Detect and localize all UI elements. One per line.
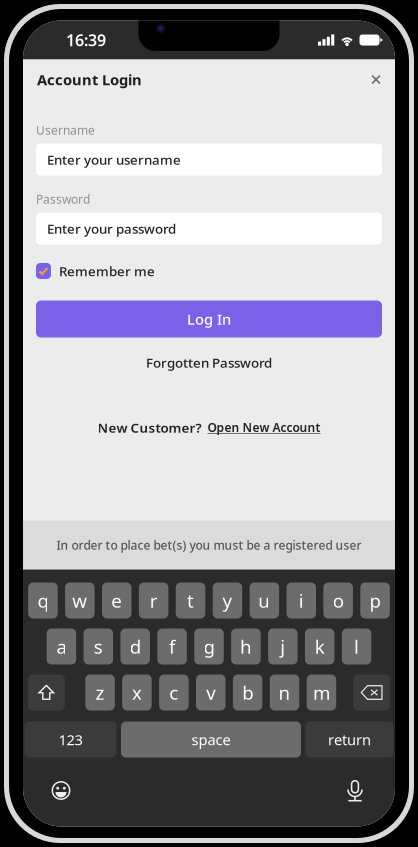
staticText: y (222, 588, 232, 613)
button[interactable]: p (360, 582, 390, 618)
staticText: 123 (58, 730, 82, 749)
staticText: z (96, 680, 105, 705)
staticText: Enter your password (47, 220, 176, 237)
button[interactable]: e (102, 582, 131, 618)
button[interactable]: j (268, 628, 298, 664)
staticText: c (169, 680, 178, 705)
button[interactable]: Log In (36, 300, 382, 337)
staticText: d (130, 634, 141, 659)
staticText: g (203, 634, 214, 659)
button[interactable]: n (270, 674, 299, 710)
button[interactable]: w (65, 582, 95, 618)
staticText: space (191, 730, 230, 749)
button[interactable]: Enter your password (36, 212, 382, 244)
button[interactable]: x (122, 674, 152, 710)
button[interactable]: a (47, 628, 76, 664)
staticText: v (206, 680, 215, 705)
staticText: 16:39 (66, 29, 106, 51)
staticText: Open New Account (207, 419, 320, 435)
button[interactable]: i (286, 582, 316, 618)
staticText: w (72, 588, 87, 613)
staticText: Account Login (37, 70, 142, 89)
button[interactable]: z (85, 674, 115, 710)
button[interactable]: Emoji (45, 775, 77, 805)
button[interactable]: f (157, 628, 187, 664)
staticText: s (94, 634, 103, 659)
staticText: k (315, 634, 325, 659)
button[interactable]: Shift (28, 674, 65, 710)
button[interactable]: b (233, 674, 262, 710)
button[interactable]: space (121, 721, 301, 757)
staticText: t (187, 588, 194, 613)
button[interactable]: h (231, 628, 261, 664)
button[interactable]: Enter your username (36, 143, 382, 175)
staticText: m (313, 680, 330, 705)
button[interactable]: q (28, 582, 58, 618)
staticText: b (242, 680, 253, 705)
button[interactable]: y (213, 582, 242, 618)
button[interactable]: Close (361, 64, 391, 94)
button[interactable]: l (342, 628, 371, 664)
button[interactable]: m (307, 674, 336, 710)
button[interactable]: s (84, 628, 113, 664)
staticText: In order to place bet(s) you must be a r… (56, 537, 361, 553)
button[interactable]: Delete (353, 674, 390, 710)
button[interactable]: r (139, 582, 168, 618)
button[interactable]: Forgotten Password (36, 349, 382, 375)
staticText: x (132, 680, 142, 705)
staticText: return (328, 730, 371, 749)
button[interactable]: return (305, 721, 393, 757)
button[interactable]: t (176, 582, 205, 618)
button[interactable]: o (323, 582, 353, 618)
button[interactable]: 123 (24, 721, 116, 757)
button[interactable]: v (196, 674, 225, 710)
button[interactable]: k (305, 628, 334, 664)
staticText: f (169, 634, 175, 659)
staticText: Username (36, 122, 95, 138)
staticText: Password (36, 191, 90, 207)
staticText: a (56, 634, 66, 659)
staticText: New Customer? (97, 419, 201, 436)
staticText: p (369, 588, 380, 613)
staticText: u (258, 588, 270, 613)
staticText: Forgotten Password (146, 354, 272, 371)
staticText: h (240, 634, 252, 659)
button[interactable]: u (250, 582, 279, 618)
button[interactable]: Open New Account (201, 416, 320, 438)
button[interactable]: Remember me (36, 263, 382, 278)
staticText: e (111, 588, 122, 613)
staticText: i (299, 588, 304, 613)
button[interactable]: g (194, 628, 224, 664)
button[interactable]: d (120, 628, 150, 664)
staticText: Enter your username (47, 151, 181, 168)
staticText: Log In (187, 309, 231, 329)
button[interactable]: c (159, 674, 189, 710)
staticText: n (279, 680, 291, 705)
button[interactable]: Dictation (339, 775, 371, 805)
staticText: j (280, 634, 285, 659)
staticText: q (37, 588, 48, 613)
staticText: o (333, 588, 344, 613)
staticText: l (354, 634, 359, 659)
staticText: Remember me (59, 262, 155, 280)
staticText: r (150, 588, 158, 613)
